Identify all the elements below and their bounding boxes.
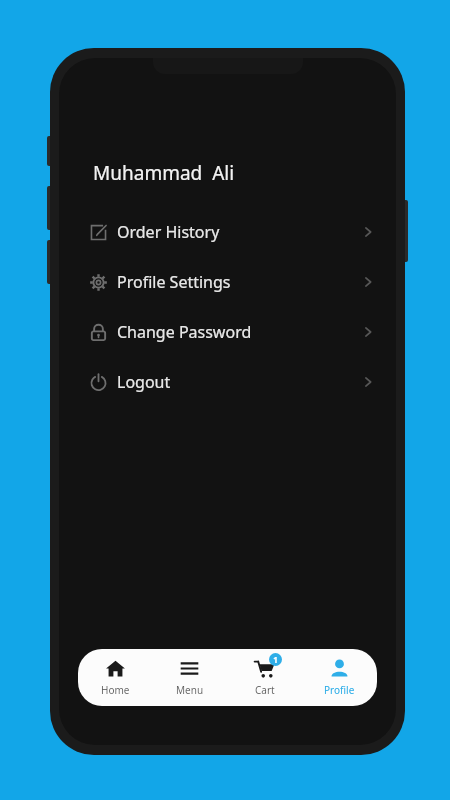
- staticText: Change Password: [117, 321, 252, 343]
- button[interactable]: Profile: [302, 649, 377, 706]
- button[interactable]: Logout: [59, 367, 396, 397]
- staticText: Home: [101, 683, 130, 697]
- staticText: 1: [273, 654, 278, 665]
- button[interactable]: Order History: [59, 217, 396, 247]
- staticText: Cart: [255, 683, 275, 697]
- staticText: Logout: [117, 371, 171, 393]
- button[interactable]: Menu: [152, 649, 227, 706]
- staticText: Menu: [176, 683, 204, 697]
- button[interactable]: Profile Settings: [59, 267, 396, 297]
- button[interactable]: Change Password: [59, 317, 396, 347]
- staticText: Profile: [324, 683, 355, 697]
- button[interactable]: 1: [227, 649, 302, 706]
- staticText: Muhammad Ali: [93, 160, 235, 186]
- staticText: Profile Settings: [117, 271, 231, 293]
- staticText: Order History: [117, 221, 220, 243]
- button[interactable]: Home: [78, 649, 152, 706]
